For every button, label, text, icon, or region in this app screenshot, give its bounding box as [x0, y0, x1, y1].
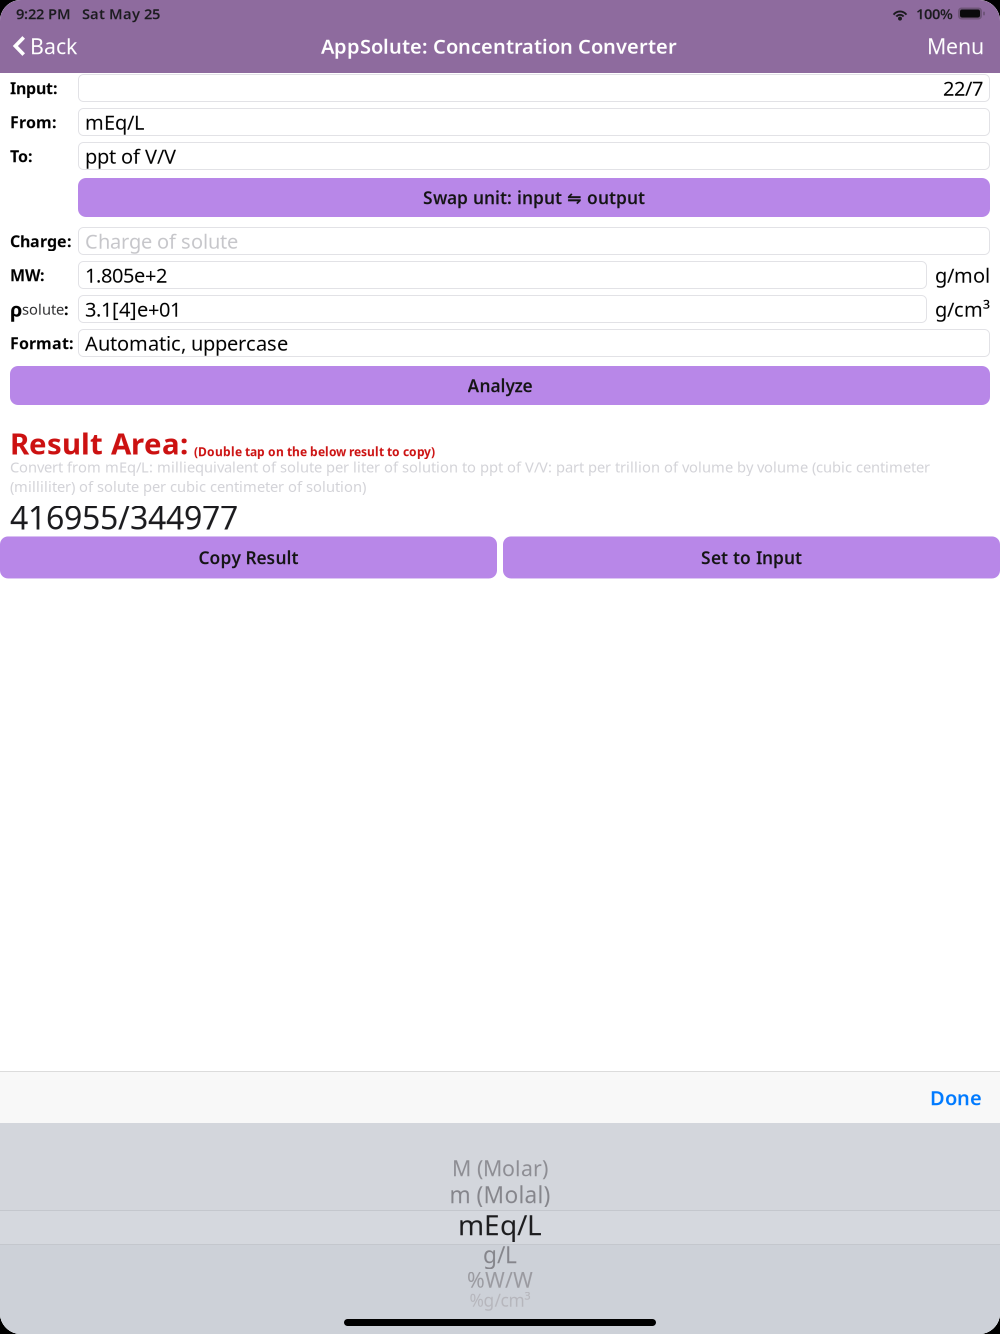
staticText: Set to Input [701, 546, 802, 569]
staticText: Result Area: [10, 423, 188, 462]
staticText: g/L [483, 1239, 517, 1269]
staticText: Menu [927, 32, 984, 60]
staticText: To: [10, 145, 32, 167]
button[interactable]: Back [0, 25, 87, 67]
button[interactable]: M (Molar) [0, 1155, 1000, 1181]
staticText: m (Molal) [449, 1179, 550, 1209]
staticText: Input: [10, 77, 57, 99]
button[interactable]: %W/W [0, 1268, 1000, 1291]
staticText: Copy Result [198, 546, 298, 569]
staticText: Automatic, uppercase [85, 330, 288, 356]
button[interactable]: Copy Result [0, 536, 497, 578]
button[interactable]: m (Molal) [0, 1181, 1000, 1208]
staticText: Convert from mEq/L: milliequivalent of s… [10, 457, 930, 496]
button[interactable]: mEq/L [0, 1208, 1000, 1241]
staticText: 3.1[4]e+01 [85, 296, 181, 322]
staticText: g/mol [935, 262, 990, 288]
staticText: Charge: [10, 230, 71, 252]
staticText: Analyze [467, 374, 532, 397]
staticText: Sat May 25 [82, 4, 160, 23]
staticText: solute [22, 299, 64, 319]
staticText: MW: [10, 264, 44, 286]
staticText: ρ [10, 296, 22, 322]
staticText: : [64, 298, 68, 320]
staticText: Swap unit: input ⇋ output [423, 186, 645, 209]
staticText: Charge of solute [85, 228, 238, 254]
staticText: %g/cm³ [469, 1288, 530, 1311]
staticText: From: [10, 111, 56, 133]
staticText: (Double tap on the below result to copy) [194, 443, 435, 459]
button[interactable]: Automatic, uppercase [78, 329, 990, 357]
staticText: Back [30, 32, 77, 60]
button[interactable]: 22/7 [78, 74, 990, 102]
staticText: AppSolute: Concentration Converter [321, 33, 677, 59]
button[interactable]: ppt of V/V [78, 142, 990, 170]
staticText: 1.805e+2 [85, 262, 167, 288]
staticText: M (Molar) [452, 1154, 548, 1182]
staticText: 9:22 PM [16, 4, 71, 23]
button[interactable]: Set to Input [503, 536, 1000, 578]
button[interactable]: Menu [911, 25, 1000, 67]
staticText: mEq/L [85, 109, 144, 135]
staticText: 416955/344977 [10, 496, 238, 538]
button[interactable]: 3.1[4]e+01 [78, 295, 927, 323]
staticText: 22/7 [943, 75, 983, 101]
button[interactable]: Analyze [10, 366, 990, 405]
button[interactable]: Charge of solute [78, 227, 990, 255]
staticText: mEq/L [458, 1206, 542, 1243]
button[interactable]: g/L [0, 1241, 1000, 1268]
button[interactable]: Swap unit: input ⇋ output [78, 178, 990, 217]
staticText: ppt of V/V [85, 143, 176, 169]
staticText: Format: [10, 332, 73, 354]
staticText: g/cm³ [935, 296, 990, 322]
button[interactable]: Done [912, 1072, 1000, 1122]
staticText: Done [930, 1084, 982, 1111]
staticText: %W/W [467, 1265, 533, 1294]
button[interactable]: 1.805e+2 [78, 261, 927, 289]
staticText: 100% [916, 4, 953, 23]
button[interactable]: Result Area: [0, 405, 1000, 539]
button[interactable]: mEq/L [78, 108, 990, 136]
